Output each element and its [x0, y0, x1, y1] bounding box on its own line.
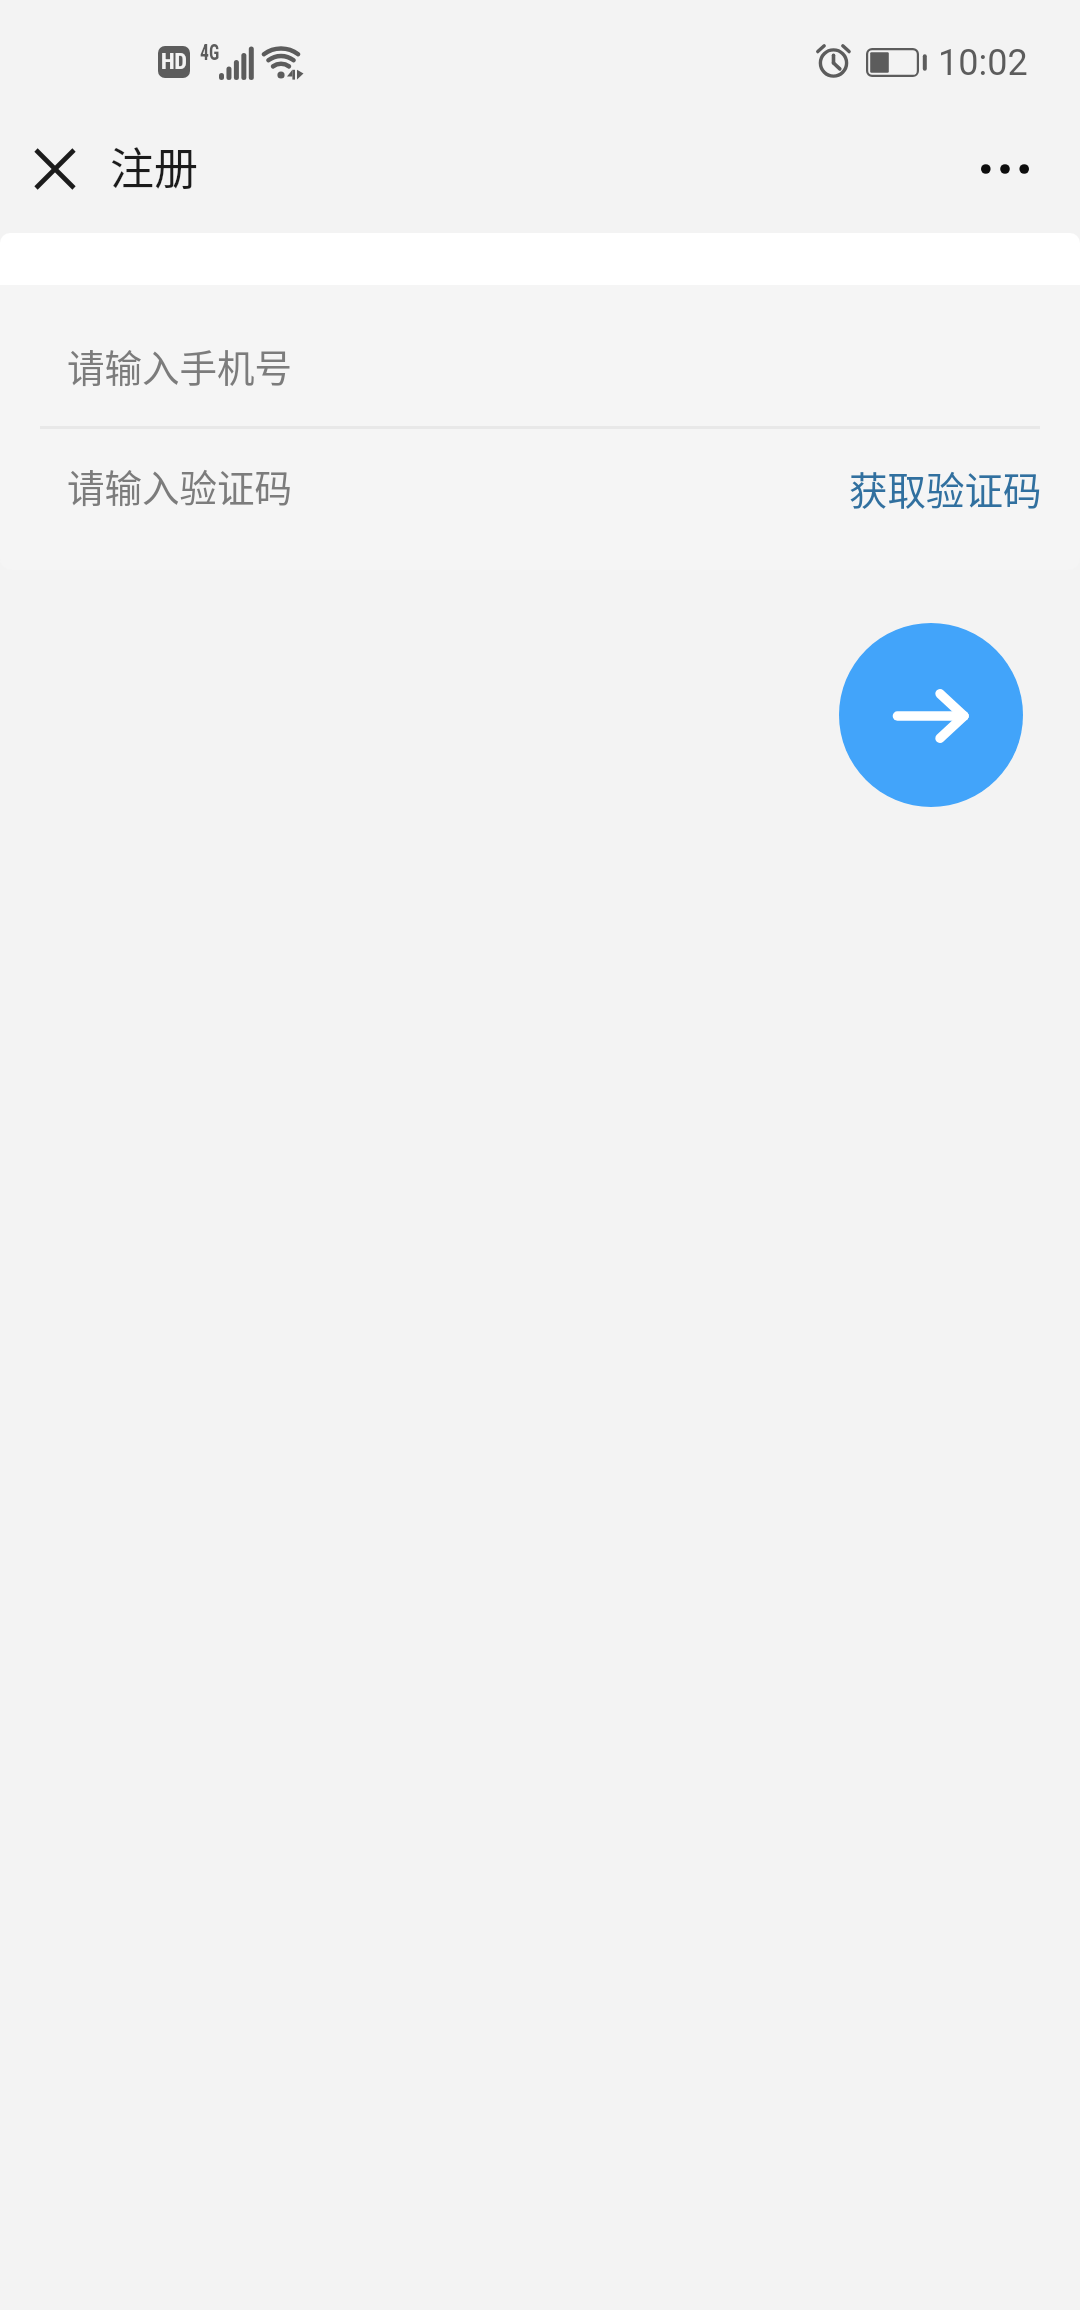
button[interactable]: Close	[12, 132, 97, 205]
staticText: 注册	[110, 134, 198, 198]
staticText: 获取验证码	[849, 460, 1042, 516]
staticText: 10:02	[938, 42, 1028, 84]
button[interactable]: More options	[962, 132, 1047, 205]
staticText: 请输入验证码	[67, 458, 292, 512]
button[interactable]: 请输入手机号	[0, 304, 1080, 426]
button[interactable]	[0, 429, 778, 550]
staticText: 4G	[200, 40, 219, 66]
staticText: 请输入手机号	[67, 338, 292, 392]
button[interactable]: Next	[839, 623, 1023, 807]
staticText: HD	[161, 49, 187, 75]
button[interactable]: 获取验证码	[849, 460, 1042, 516]
